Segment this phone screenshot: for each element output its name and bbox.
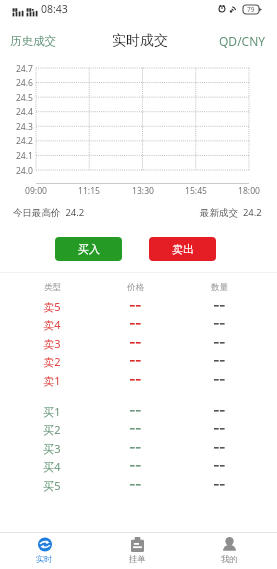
staticText: 11:15: [78, 185, 100, 197]
staticText: 最新成交 24.2: [200, 206, 262, 219]
staticText: 卖3: [43, 336, 61, 351]
staticText: QD/CNY: [219, 33, 266, 49]
staticText: 13:30: [132, 185, 154, 197]
staticText: 79: [247, 5, 255, 14]
staticText: 数量: [211, 282, 228, 293]
button[interactable]: QD/CNY: [213, 29, 277, 53]
button[interactable]: 买3: [0, 439, 277, 457]
staticText: 卖5: [43, 299, 61, 314]
staticText: 24.3: [15, 121, 33, 133]
staticText: 24.2: [15, 135, 33, 147]
button[interactable]: 卖出: [149, 237, 216, 261]
button[interactable]: 卖1: [0, 371, 277, 389]
button[interactable]: 买5: [0, 476, 277, 494]
staticText: 卖出: [172, 242, 194, 256]
staticText: 09:00: [25, 185, 47, 197]
staticText: 卖2: [43, 354, 61, 369]
staticText: 价格: [127, 282, 144, 293]
button[interactable]: Orders: [91, 533, 183, 569]
button[interactable]: 卖5: [0, 297, 277, 315]
staticText: 18:00: [238, 185, 260, 197]
staticText: 挂单: [129, 554, 146, 564]
button[interactable]: 历史成交: [0, 30, 62, 52]
button[interactable]: 买4: [0, 457, 277, 475]
staticText: 买3: [43, 441, 61, 456]
button[interactable]: 买1: [0, 402, 277, 420]
staticText: 24.7: [15, 63, 33, 75]
staticText: 类型: [44, 282, 61, 293]
staticText: 历史成交: [10, 34, 56, 48]
staticText: 我的: [221, 554, 238, 564]
staticText: 买4: [43, 459, 61, 474]
staticText: 24.5: [15, 92, 33, 104]
staticText: 15:45: [185, 185, 207, 197]
staticText: 买1: [43, 404, 61, 419]
staticText: 买入: [78, 242, 100, 256]
button[interactable]: 买2: [0, 420, 277, 438]
staticText: 买5: [43, 478, 61, 493]
staticText: 买2: [43, 422, 61, 437]
staticText: 24.4: [15, 106, 33, 118]
staticText: 卖1: [43, 373, 61, 388]
staticText: 24.1: [15, 150, 33, 162]
staticText: 08:43: [41, 2, 68, 16]
button[interactable]: Profile: [183, 533, 275, 569]
staticText: 实时成交: [112, 32, 168, 50]
button[interactable]: 卖4: [0, 315, 277, 333]
button[interactable]: 卖3: [0, 334, 277, 352]
button[interactable]: Realtime: [0, 533, 91, 569]
staticText: 24.0: [15, 165, 33, 177]
staticText: 24.6: [15, 77, 33, 89]
staticText: 今日最高价 24.2: [13, 206, 85, 219]
button[interactable]: 买入: [55, 237, 122, 261]
staticText: 卖4: [43, 317, 61, 332]
button[interactable]: 卖2: [0, 352, 277, 370]
staticText: 实时: [36, 554, 53, 564]
